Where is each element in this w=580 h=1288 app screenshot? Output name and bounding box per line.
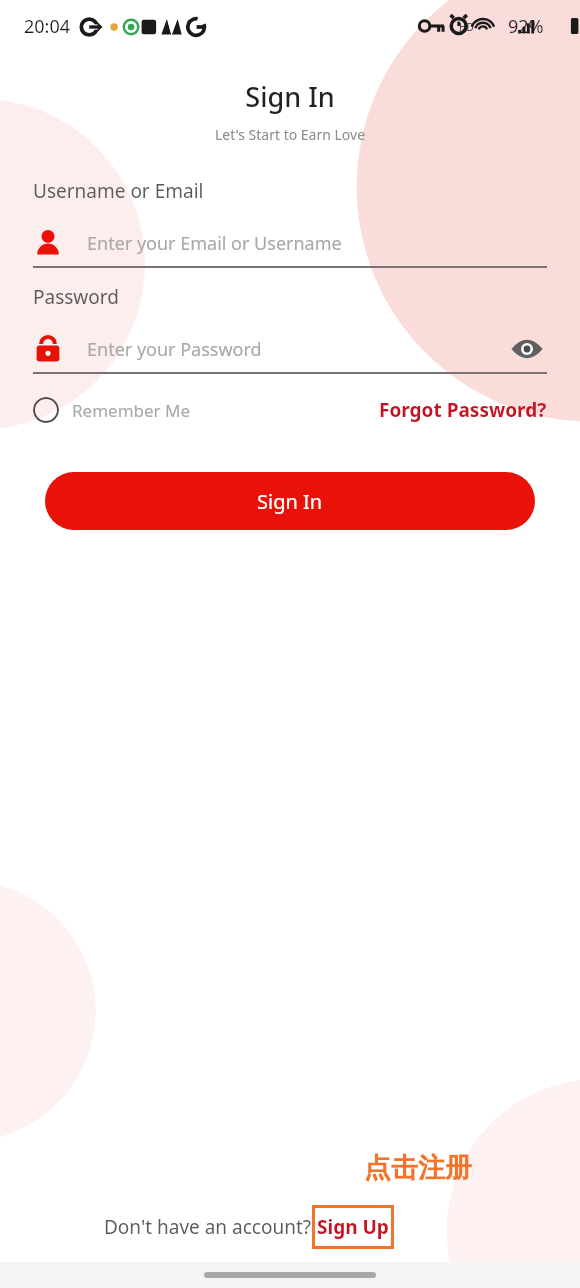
staticText: 20:04 — [24, 14, 71, 39]
staticText: 点击注册 — [364, 1151, 472, 1185]
staticText: Enter your Password — [87, 337, 262, 362]
button[interactable]: Enter your Email or Username — [33, 220, 547, 266]
staticText: Password — [33, 284, 119, 310]
staticText: Sign Up — [317, 1214, 389, 1240]
button[interactable]: Remember Me — [33, 397, 191, 423]
button[interactable]: Enter your Password — [33, 334, 507, 364]
staticText: Enter your Email or Username — [87, 231, 342, 256]
staticText: Let's Start to Earn Love — [0, 125, 580, 144]
staticText: 92% — [508, 14, 544, 39]
staticText: Sign In — [257, 488, 323, 515]
staticText: Remember Me — [72, 399, 191, 422]
staticText: Sign In — [0, 78, 580, 115]
staticText: HD — [459, 20, 474, 34]
staticText: Forgot Password? — [379, 397, 547, 423]
button[interactable]: Forgot Password? — [379, 397, 547, 423]
staticText: Username or Email — [33, 178, 204, 204]
button[interactable]: Sign In — [45, 472, 535, 530]
button[interactable]: Show password — [507, 329, 547, 369]
staticText: Don't have an account? — [104, 1214, 312, 1240]
button[interactable]: Sign Up — [312, 1205, 394, 1249]
